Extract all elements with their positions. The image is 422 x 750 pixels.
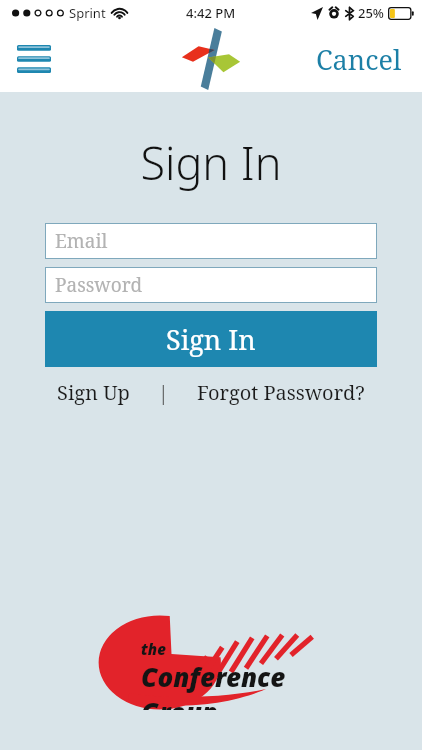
button[interactable]: Menu [10,35,58,83]
button[interactable]: Password [45,267,377,303]
button[interactable]: Forgot Password? [191,375,371,410]
staticText: Email [55,228,108,254]
staticText: Sign Up [57,379,130,406]
staticText: Conference Group [141,659,336,710]
staticText: | [158,380,169,406]
staticText: Sprint [69,4,106,22]
staticText: Password [55,272,143,298]
staticText: Forgot Password? [197,379,365,406]
button[interactable]: Home logo [178,26,244,92]
staticText: Cancel [316,41,402,78]
staticText: the [141,639,166,659]
staticText: Sign In [0,132,422,193]
staticText: 4:42 PM [186,4,236,22]
button[interactable]: Email [45,223,377,259]
button[interactable]: Cancel [310,33,408,86]
button[interactable]: Sign Up [51,375,136,410]
button[interactable]: Sign In [45,311,377,367]
staticText: 25% [358,4,384,22]
staticText: Sign In [166,321,256,358]
